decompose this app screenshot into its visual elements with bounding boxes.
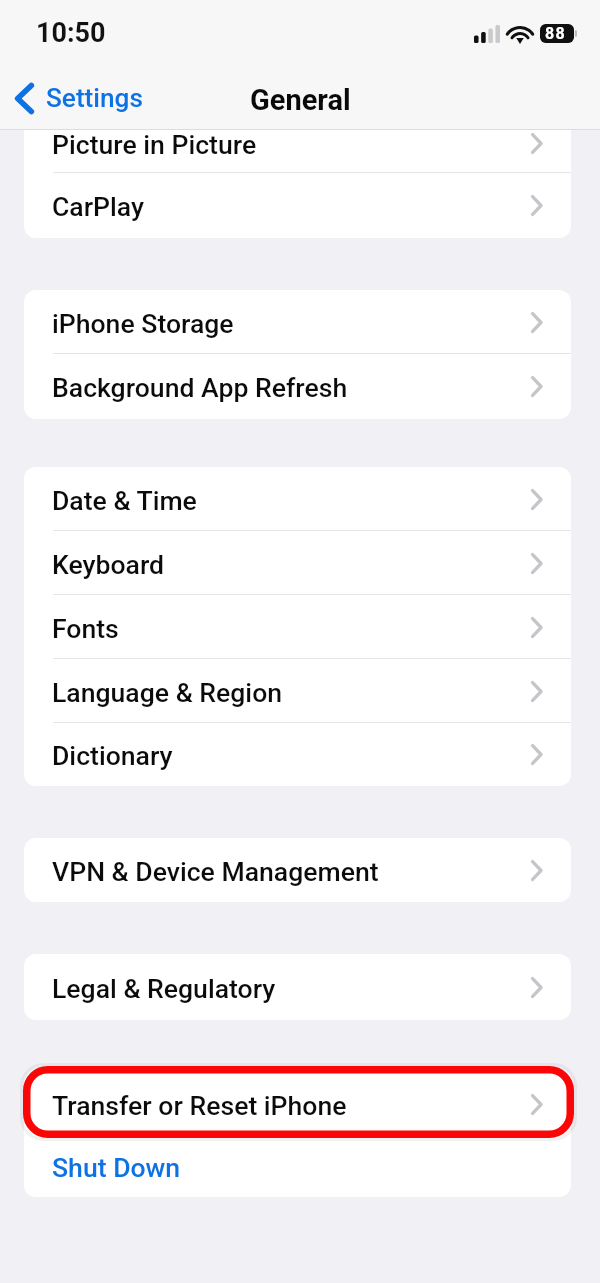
staticText: General — [250, 83, 351, 117]
button[interactable]: Fonts — [24, 595, 571, 659]
button[interactable]: Language & Region — [24, 659, 571, 723]
button[interactable]: Background App Refresh — [24, 354, 571, 419]
staticText: CarPlay — [52, 191, 145, 222]
staticText: Dictionary — [52, 740, 173, 771]
staticText: Fonts — [52, 613, 119, 644]
button[interactable]: CarPlay — [24, 173, 571, 238]
staticText: Keyboard — [52, 549, 165, 580]
staticText: Background App Refresh — [52, 372, 348, 403]
staticText: VPN & Device Management — [52, 856, 379, 887]
staticText: 10:50 — [36, 17, 106, 49]
staticText: Language & Region — [52, 677, 283, 708]
button[interactable]: Date & Time — [24, 467, 571, 531]
button[interactable]: Dictionary — [24, 723, 571, 786]
button[interactable]: Transfer or Reset iPhone — [24, 1072, 571, 1136]
staticText: Date & Time — [52, 485, 197, 516]
button[interactable]: Keyboard — [24, 531, 571, 595]
staticText: Settings — [46, 83, 143, 114]
button[interactable]: Picture in Picture — [24, 130, 571, 173]
staticText: Legal & Regulatory — [52, 973, 276, 1004]
button[interactable]: Legal & Regulatory — [24, 954, 571, 1020]
staticText: 88 — [545, 24, 566, 43]
button[interactable]: iPhone Storage — [24, 290, 571, 354]
staticText: iPhone Storage — [52, 308, 234, 339]
button[interactable]: VPN & Device Management — [24, 838, 571, 902]
staticText: Shut Down — [52, 1152, 181, 1183]
staticText: Transfer or Reset iPhone — [52, 1090, 347, 1121]
button[interactable]: Shut Down — [24, 1136, 571, 1197]
staticText: Picture in Picture — [52, 130, 257, 160]
button[interactable]: Back to Settings — [0, 77, 155, 120]
